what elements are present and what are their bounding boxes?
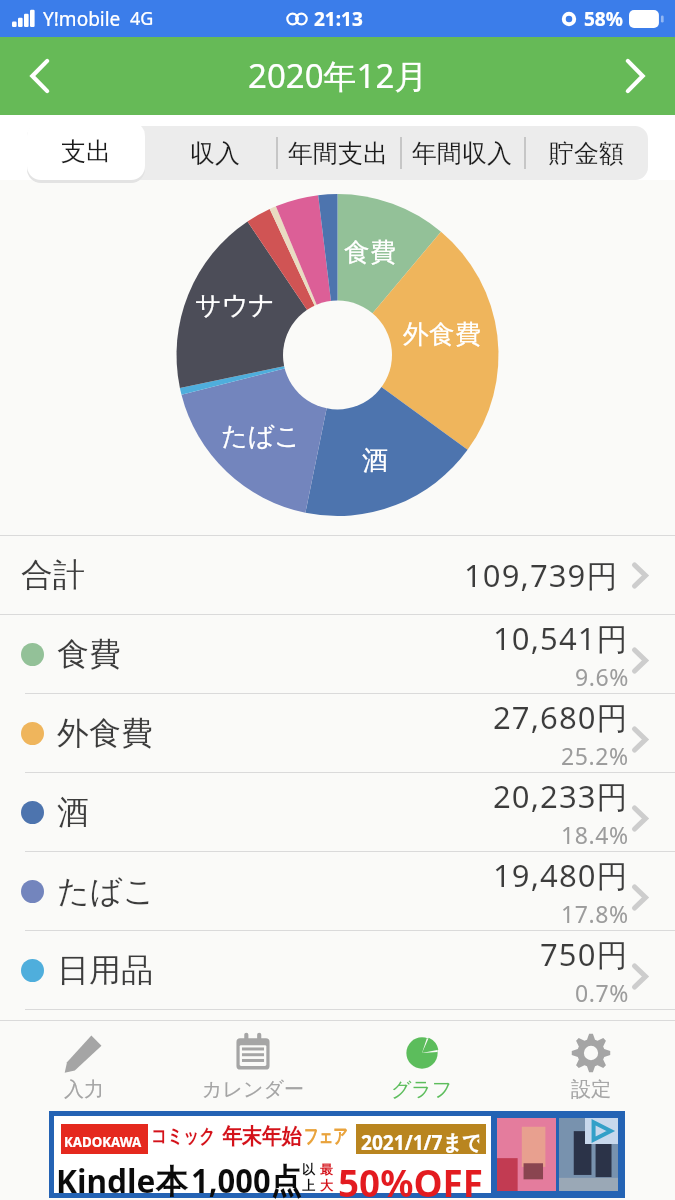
staticText: 2021/1/7まで bbox=[361, 1128, 479, 1157]
staticText: 設定 bbox=[571, 1077, 611, 1102]
staticText: 食費 bbox=[57, 634, 121, 674]
staticText: カレンダー bbox=[202, 1077, 304, 1102]
staticText: KADOKAWA bbox=[64, 1132, 142, 1151]
staticText: 27,680円 bbox=[493, 696, 629, 738]
staticText: 大 bbox=[320, 1177, 333, 1193]
button[interactable]: カレンダー bbox=[168, 1021, 337, 1110]
staticText: 18.4% bbox=[561, 819, 629, 850]
staticText: 貯金額 bbox=[549, 138, 624, 169]
staticText: 収入 bbox=[190, 138, 240, 169]
staticText: サウナ bbox=[195, 289, 275, 322]
staticText: コミック bbox=[151, 1124, 215, 1149]
staticText: フェア bbox=[304, 1124, 348, 1149]
button[interactable]: Previous month bbox=[0, 37, 80, 115]
staticText: グラフ bbox=[391, 1077, 453, 1102]
staticText: たばこ bbox=[57, 871, 156, 911]
staticText: 支出 bbox=[67, 138, 117, 169]
staticText: 10,541円 bbox=[493, 617, 629, 659]
staticText: 1,000点 bbox=[191, 1157, 302, 1200]
button[interactable]: 日用品 bbox=[0, 931, 675, 1009]
staticText: 750円 bbox=[540, 933, 629, 975]
button[interactable]: たばこ bbox=[0, 852, 675, 930]
button[interactable]: 食費 bbox=[0, 615, 675, 693]
staticText: 日用品 bbox=[57, 950, 153, 990]
button[interactable]: 入力 bbox=[0, 1021, 168, 1110]
staticText: 酒 bbox=[57, 792, 89, 832]
button[interactable]: 支出 bbox=[27, 122, 145, 180]
staticText: 21:13 bbox=[314, 6, 363, 32]
button[interactable]: 年間収入 bbox=[400, 126, 524, 180]
button[interactable]: グラフ bbox=[337, 1021, 506, 1110]
button[interactable]: 年間支出 bbox=[276, 126, 400, 180]
staticText: 最 bbox=[320, 1161, 333, 1177]
staticText: 0.7% bbox=[575, 977, 629, 1008]
button[interactable]: 合計 bbox=[0, 536, 675, 614]
button[interactable]: 設定 bbox=[506, 1021, 675, 1110]
staticText: 58% bbox=[584, 6, 623, 32]
staticText: 年間収入 bbox=[412, 138, 512, 169]
staticText: 年間支出 bbox=[288, 138, 388, 169]
staticText: 17.8% bbox=[561, 898, 629, 929]
staticText: 9.6% bbox=[575, 661, 629, 692]
staticText: Kindle本 bbox=[56, 1158, 187, 1200]
staticText: 以 bbox=[302, 1161, 315, 1177]
staticText: Y!mobile bbox=[43, 6, 121, 32]
staticText: 入力 bbox=[64, 1077, 104, 1102]
staticText: たばこ bbox=[221, 420, 301, 453]
button[interactable]: 酒 bbox=[0, 773, 675, 851]
staticText: 年末年始 bbox=[222, 1123, 301, 1151]
button[interactable]: 外食費 bbox=[0, 694, 675, 772]
staticText: 支出 bbox=[61, 136, 111, 167]
button[interactable]: 貯金額 bbox=[524, 126, 648, 180]
staticText: 外食費 bbox=[57, 713, 153, 753]
staticText: 酒 bbox=[362, 444, 388, 477]
staticText: 食費 bbox=[344, 236, 396, 269]
staticText: 109,739円 bbox=[464, 554, 619, 596]
staticText: 合計 bbox=[21, 555, 85, 595]
staticText: 外食費 bbox=[403, 318, 481, 351]
staticText: 4G bbox=[130, 6, 154, 31]
button[interactable]: 支出 bbox=[30, 126, 153, 180]
staticText: 25.2% bbox=[561, 740, 629, 771]
staticText: 上 bbox=[302, 1177, 315, 1193]
button[interactable]: Next month bbox=[595, 37, 675, 115]
button[interactable]: 収入 bbox=[153, 126, 276, 180]
staticText: 19,480円 bbox=[493, 854, 629, 896]
staticText: 2020年12月 bbox=[248, 53, 428, 98]
staticText: 20,233円 bbox=[493, 775, 629, 817]
staticText: 50%OFF bbox=[338, 1156, 483, 1200]
